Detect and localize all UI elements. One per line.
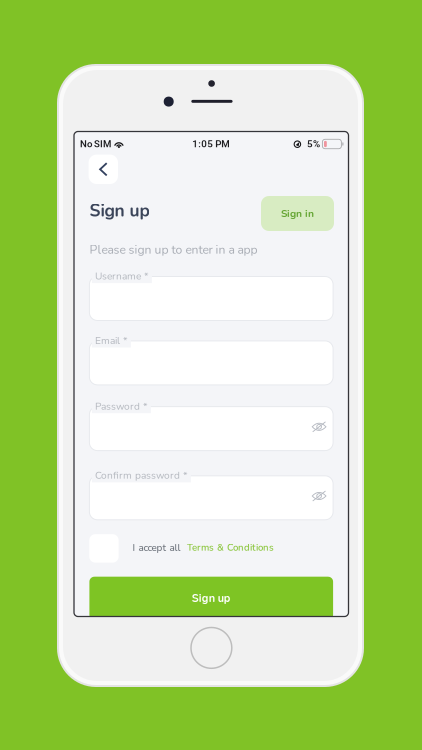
staticText: I accept all bbox=[132, 541, 180, 554]
staticText: Sign up bbox=[192, 591, 231, 606]
staticText: 5% bbox=[307, 138, 320, 150]
staticText: 1:05 PM bbox=[192, 138, 230, 150]
staticText: Terms & Conditions bbox=[187, 541, 274, 554]
staticText: Password * bbox=[95, 399, 148, 413]
staticText: No SIM bbox=[80, 138, 111, 150]
button[interactable]: Sign in bbox=[261, 196, 334, 231]
button[interactable]: Back bbox=[89, 155, 118, 184]
staticText: Please sign up to enter in a app bbox=[89, 241, 257, 258]
staticText: Confirm password * bbox=[95, 469, 188, 482]
staticText: Username * bbox=[95, 269, 149, 283]
staticText: Sign in bbox=[281, 206, 314, 220]
staticText: Email * bbox=[95, 334, 128, 347]
staticText: Sign up bbox=[89, 199, 149, 223]
button[interactable]: Sign up bbox=[89, 577, 333, 620]
button[interactable]: Terms & Conditions bbox=[187, 541, 274, 554]
